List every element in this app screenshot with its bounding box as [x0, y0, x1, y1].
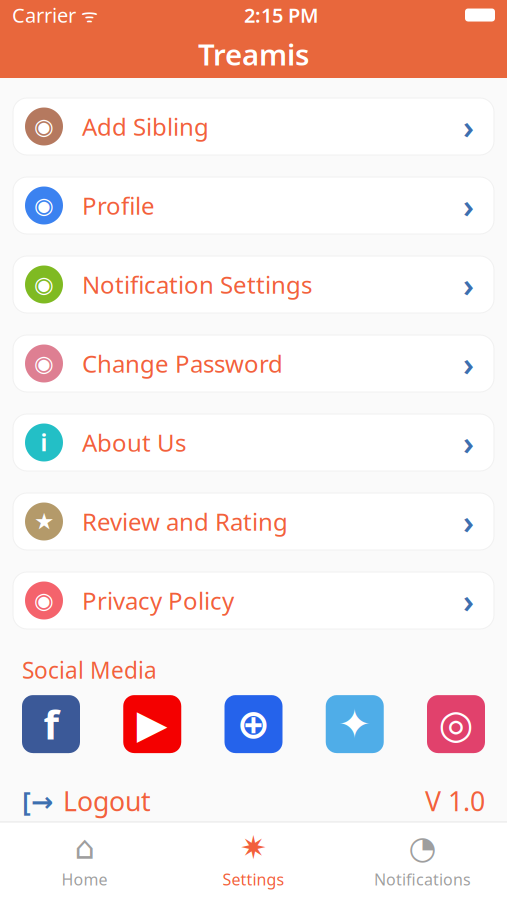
staticText: Carrier [12, 2, 76, 28]
staticText: ◉ [34, 351, 54, 376]
staticText: [→ [22, 783, 53, 818]
staticText: › [463, 421, 474, 464]
button[interactable]: ◉ [13, 572, 494, 629]
button[interactable]: ◉ [13, 335, 494, 392]
staticText: › [463, 184, 474, 227]
button[interactable]: Twitter [326, 695, 384, 753]
staticText: ◎ [438, 701, 473, 747]
staticText: Social Media [22, 655, 157, 685]
button[interactable]: Facebook [22, 695, 80, 753]
staticText: ◔ [408, 829, 436, 866]
button[interactable]: ◉ [13, 256, 494, 313]
staticText: ⊕ [236, 701, 270, 747]
staticText: i [40, 427, 47, 457]
staticText: Settings [222, 869, 284, 890]
staticText: Logout [63, 783, 151, 818]
staticText: › [463, 342, 474, 385]
staticText: Notification Settings [82, 269, 312, 300]
button[interactable]: ★ [13, 493, 494, 550]
staticText: ◉ [34, 114, 54, 139]
staticText: › [463, 263, 474, 306]
staticText: ◉ [34, 193, 54, 218]
staticText: › [463, 500, 474, 543]
button[interactable]: ✷ [169, 829, 338, 890]
button[interactable]: ⌂ [0, 829, 169, 890]
button[interactable]: i [13, 414, 494, 471]
button[interactable]: ◉ [13, 98, 494, 155]
button[interactable]: ◔ [338, 829, 507, 890]
staticText: ◉ [34, 588, 54, 613]
staticText: About Us [82, 427, 186, 458]
staticText: › [463, 579, 474, 622]
staticText: ᯤ [76, 3, 98, 27]
staticText: › [463, 105, 474, 148]
staticText: Add Sibling [82, 111, 209, 142]
button[interactable]: Instagram [427, 695, 485, 753]
staticText: ✷ [240, 829, 267, 866]
staticText: Privacy Policy [82, 585, 234, 616]
staticText: ▶ [137, 701, 168, 747]
button[interactable]: ◉ [13, 177, 494, 234]
staticText: Notifications [374, 869, 471, 890]
staticText: 2:15 PM [244, 2, 319, 28]
button[interactable]: YouTube [123, 695, 181, 753]
staticText: ✦ [338, 701, 372, 747]
button[interactable]: Website [224, 695, 282, 753]
staticText: V 1.0 [425, 783, 485, 818]
staticText: Review and Rating [82, 506, 288, 537]
staticText: ◉ [34, 272, 54, 297]
staticText: ⌂ [74, 829, 94, 866]
staticText: Treamis [198, 34, 309, 73]
staticText: Home [61, 869, 107, 890]
staticText: Profile [82, 190, 155, 221]
staticText: Change Password [82, 348, 283, 379]
staticText: f [43, 697, 58, 751]
button[interactable]: [→ [22, 783, 151, 818]
staticText: ★ [34, 509, 54, 534]
